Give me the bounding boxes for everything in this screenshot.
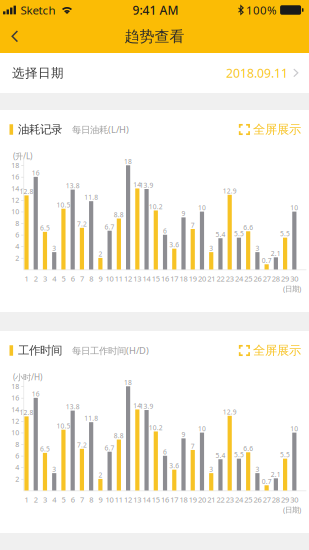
staticText: 4 <box>15 241 19 251</box>
staticText: 每日工作时间(H/D) <box>72 344 149 357</box>
staticText: 9 <box>98 273 102 284</box>
staticText: 5.5 <box>280 450 290 459</box>
staticText: 16 <box>11 393 19 403</box>
staticText: 2 <box>15 474 19 484</box>
staticText: 18 <box>124 157 132 166</box>
staticText: 14 <box>11 184 19 193</box>
staticText: 24 <box>235 273 243 284</box>
staticText: 14 <box>133 180 141 189</box>
staticText: 3 <box>43 273 47 284</box>
staticText: 100% <box>246 2 277 18</box>
staticText: 6.7 <box>105 443 115 452</box>
staticText: 13.9 <box>140 181 154 190</box>
staticText: 6.6 <box>243 223 253 232</box>
staticText: 11 <box>115 494 123 505</box>
staticText: 14 <box>143 494 151 505</box>
staticText: 2.1 <box>271 249 281 258</box>
staticText: 10 <box>290 203 298 212</box>
staticText: 7 <box>191 220 195 230</box>
staticText: 8 <box>15 439 19 449</box>
staticText: 20 <box>198 273 206 284</box>
staticText: 6 <box>15 230 19 239</box>
staticText: 26 <box>253 494 261 505</box>
staticText: 25 <box>244 494 252 505</box>
staticText: 8 <box>89 494 93 505</box>
staticText: 6 <box>71 273 75 284</box>
staticText: 7 <box>80 494 84 505</box>
staticText: 0.7 <box>262 477 272 486</box>
staticText: 22 <box>216 273 224 284</box>
staticText: 10 <box>106 273 114 284</box>
staticText: 26 <box>253 273 261 284</box>
staticText: 2 <box>34 273 38 284</box>
staticText: 全屏展示 <box>253 343 301 358</box>
staticText: 6.6 <box>243 444 253 453</box>
staticText: 16 <box>11 172 19 182</box>
staticText: 28 <box>272 273 280 284</box>
staticText: 9 <box>181 430 185 439</box>
staticText: 18 <box>11 160 19 170</box>
staticText: 2 <box>15 253 19 263</box>
staticText: 8 <box>89 273 93 284</box>
staticText: 7 <box>191 441 195 451</box>
staticText: 13.8 <box>66 402 80 411</box>
button[interactable]: 全屏展示 <box>239 117 301 141</box>
staticText: 2 <box>98 249 102 259</box>
staticText: 13 <box>133 494 141 505</box>
staticText: 选择日期 <box>12 65 64 81</box>
staticText: (日期) <box>283 283 301 294</box>
staticText: 7 <box>80 273 84 284</box>
staticText: 4 <box>52 494 56 505</box>
staticText: 3 <box>255 465 259 474</box>
staticText: 趋势查看 <box>124 27 184 46</box>
staticText: 29 <box>281 273 289 284</box>
staticText: 5.5 <box>280 229 290 238</box>
staticText: 29 <box>281 494 289 505</box>
staticText: 17 <box>170 494 178 505</box>
staticText: 14 <box>11 405 19 414</box>
staticText: 22 <box>216 494 224 505</box>
staticText: 5.5 <box>234 229 244 238</box>
staticText: 11 <box>115 273 123 284</box>
staticText: 12.9 <box>223 407 237 416</box>
staticText: 13.8 <box>66 181 80 190</box>
staticText: 6.5 <box>40 444 50 453</box>
staticText: 11.8 <box>84 193 98 202</box>
staticText: 10.2 <box>149 423 163 432</box>
staticText: 10.2 <box>149 202 163 211</box>
staticText: 2 <box>98 470 102 480</box>
staticText: 9 <box>98 494 102 505</box>
staticText: 27 <box>263 273 271 284</box>
staticText: 6.7 <box>105 222 115 231</box>
staticText: 10 <box>106 494 114 505</box>
staticText: 7.2 <box>77 219 87 228</box>
staticText: 3 <box>52 465 56 474</box>
staticText: 28 <box>272 494 280 505</box>
staticText: 5.4 <box>215 230 225 239</box>
staticText: 6.5 <box>40 223 50 232</box>
button[interactable]: 全屏展示 <box>239 338 301 362</box>
button[interactable]: 选择日期 <box>0 53 309 93</box>
staticText: 20 <box>198 494 206 505</box>
staticText: 4 <box>52 273 56 284</box>
staticText: 10.5 <box>56 200 70 209</box>
staticText: 9 <box>181 209 185 218</box>
staticText: 13.9 <box>140 402 154 411</box>
staticText: 16 <box>161 273 169 284</box>
staticText: 4 <box>15 462 19 472</box>
staticText: 12.8 <box>19 187 33 196</box>
staticText: 2.1 <box>271 470 281 479</box>
staticText: 18 <box>11 381 19 391</box>
button[interactable]: Back <box>0 20 30 53</box>
staticText: 3 <box>209 465 213 474</box>
staticText: 1 <box>24 273 28 284</box>
staticText: 16 <box>32 389 40 398</box>
staticText: 10 <box>11 207 19 216</box>
staticText: 0.7 <box>262 256 272 265</box>
staticText: 3.6 <box>169 461 179 470</box>
staticText: 13 <box>133 273 141 284</box>
staticText: 10 <box>11 428 19 437</box>
staticText: 5.5 <box>234 450 244 459</box>
staticText: 全屏展示 <box>253 122 301 137</box>
staticText: 10 <box>198 203 206 212</box>
